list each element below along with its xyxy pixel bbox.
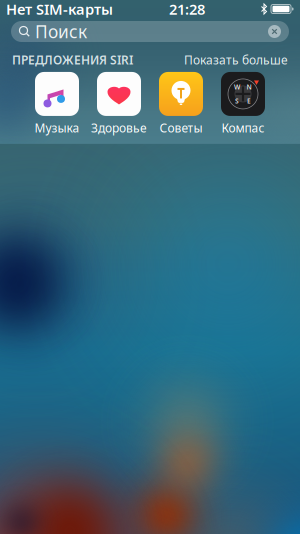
staticText: Компас — [221, 120, 264, 136]
staticText: Советы — [159, 120, 202, 136]
staticText: Поиск — [35, 20, 87, 43]
staticText: ПРЕДЛОЖЕНИЯ SIRI — [12, 52, 133, 68]
staticText: Показать больше — [184, 52, 288, 68]
button[interactable]: Советы — [150, 72, 212, 136]
button[interactable]: Здоровье — [88, 72, 150, 136]
button[interactable]: N — [212, 72, 274, 136]
staticText: W — [234, 82, 240, 91]
button[interactable]: Показать больше — [184, 52, 288, 68]
staticText: E — [247, 96, 251, 105]
button[interactable]: Поиск — [11, 21, 289, 42]
staticText: 21:28 — [169, 0, 205, 19]
staticText: Музыка — [34, 120, 79, 136]
button[interactable]: Музыка — [26, 72, 88, 136]
staticText: N — [246, 82, 251, 91]
staticText: S — [235, 96, 239, 105]
staticText: Нет SIM-карты — [6, 0, 113, 19]
staticText: Здоровье — [91, 120, 147, 136]
